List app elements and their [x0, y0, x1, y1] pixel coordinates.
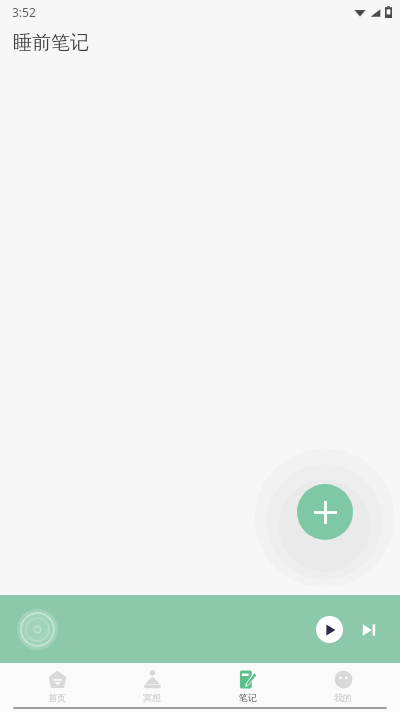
staticText: 首页 — [48, 692, 66, 703]
button[interactable]: 笔记 — [210, 668, 286, 703]
button[interactable]: 首页 — [19, 668, 95, 703]
staticText: 笔记 — [239, 692, 257, 703]
button[interactable]: Album art — [17, 609, 58, 650]
staticText: 冥想 — [143, 692, 161, 703]
staticText: 睡前笔记 — [13, 31, 89, 55]
staticText: 我的 — [334, 692, 352, 703]
button[interactable]: 冥想 — [114, 668, 190, 703]
staticText: 3:52 — [12, 4, 36, 20]
button[interactable]: 我的 — [305, 668, 381, 703]
button[interactable]: Next track — [358, 619, 380, 641]
button[interactable]: Add note — [297, 484, 353, 540]
button[interactable]: Album art — [0, 595, 400, 663]
button[interactable]: Play — [316, 616, 343, 643]
